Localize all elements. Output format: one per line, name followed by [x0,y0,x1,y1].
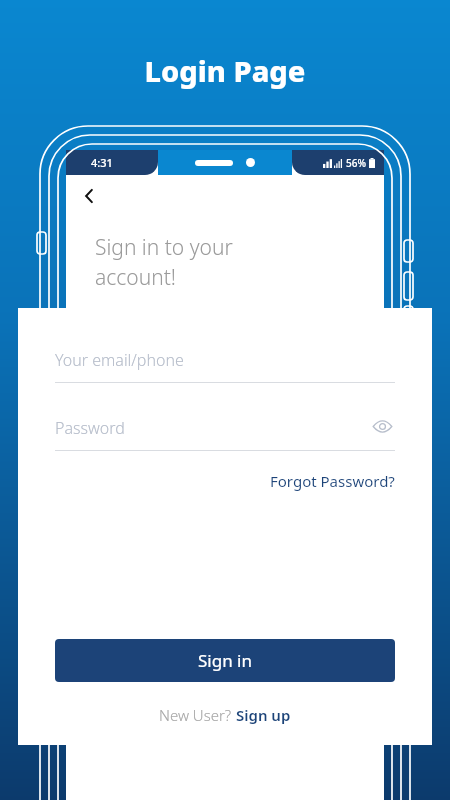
staticText: 4:31 [91,155,113,170]
staticText: Sign up [236,705,291,725]
button[interactable]: Back [74,181,104,211]
button[interactable]: Sign up [236,705,291,725]
staticText: New User? [159,705,236,725]
staticText: Sign in to your account! [95,233,233,291]
button[interactable]: Forgot Password? [270,468,395,494]
staticText: 56% [346,156,366,170]
button[interactable]: Password [55,417,395,451]
staticText: Sign in [198,649,252,672]
button[interactable]: Show password [369,413,395,439]
button[interactable]: Sign in [55,639,395,682]
staticText: Your email/phone [55,349,184,371]
button[interactable]: Your email/phone [55,349,395,383]
staticText: Password [55,417,125,439]
staticText: Login Page [0,51,450,90]
staticText: Forgot Password? [270,471,395,491]
